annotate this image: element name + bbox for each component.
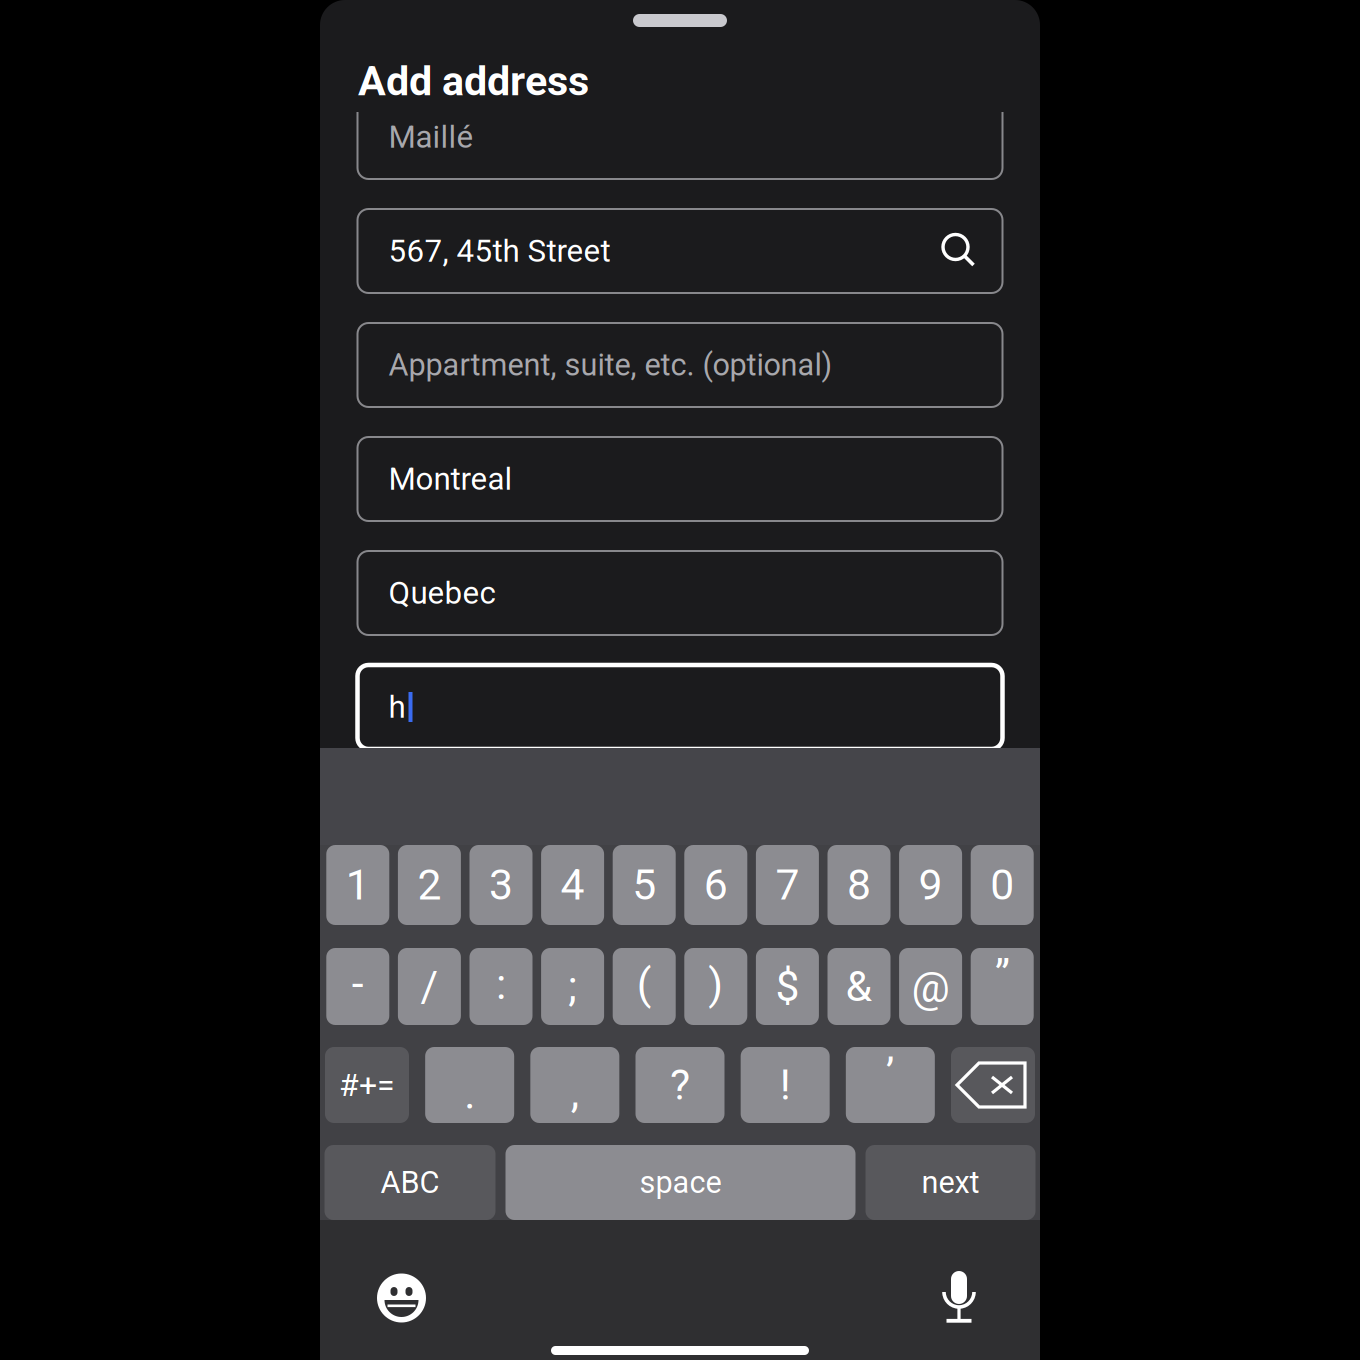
button[interactable]: ! — [741, 1047, 830, 1123]
staticText: . — [464, 1069, 475, 1119]
staticText: / — [420, 961, 438, 1011]
button[interactable]: Maillé — [357, 95, 1002, 179]
button[interactable]: Emoji keyboard — [377, 1273, 426, 1322]
button[interactable]: ABC — [324, 1145, 495, 1220]
button[interactable]: $ — [756, 948, 819, 1025]
button[interactable]: Delete — [951, 1047, 1035, 1123]
button[interactable]: - — [326, 948, 389, 1025]
button[interactable]: Dictation — [945, 1271, 979, 1325]
button[interactable]: 0 — [971, 845, 1034, 925]
button[interactable]: 6 — [684, 845, 747, 925]
staticText: 5 — [632, 860, 656, 910]
staticText: ; — [568, 961, 577, 1011]
button[interactable]: , — [530, 1047, 619, 1123]
staticText: Quebec — [388, 575, 495, 611]
staticText: next — [921, 1164, 979, 1200]
button[interactable]: 5 — [613, 845, 676, 925]
staticText: space — [639, 1164, 721, 1200]
staticText: 1 — [346, 860, 370, 910]
staticText: Maillé — [388, 119, 473, 155]
staticText: ’ — [886, 1049, 895, 1099]
staticText: 4 — [561, 860, 585, 910]
staticText: 0 — [990, 860, 1014, 910]
staticText: Montreal — [388, 461, 512, 497]
staticText: Add address — [358, 57, 589, 105]
button[interactable]: 9 — [899, 845, 962, 925]
button[interactable]: & — [827, 948, 890, 1025]
staticText: 2 — [417, 860, 441, 910]
button[interactable]: 4 — [541, 845, 604, 925]
button[interactable]: 567, 45th Street — [357, 209, 1002, 293]
staticText: - — [352, 958, 364, 1008]
staticText: Appartment, suite, etc. (optional) — [388, 347, 832, 383]
staticText: #+= — [339, 1066, 395, 1104]
button[interactable]: . — [425, 1047, 514, 1123]
button[interactable]: space — [505, 1145, 855, 1220]
button[interactable]: Appartment, suite, etc. (optional) — [357, 323, 1002, 407]
staticText: ABC — [380, 1164, 439, 1200]
button[interactable]: #+= — [325, 1047, 409, 1123]
staticText: @ — [912, 962, 950, 1012]
button[interactable]: ” — [971, 948, 1034, 1025]
button[interactable]: Montreal — [357, 437, 1002, 521]
staticText: h — [388, 689, 405, 725]
staticText: 7 — [775, 860, 799, 910]
staticText: & — [845, 961, 872, 1011]
button[interactable]: 8 — [827, 845, 890, 925]
button[interactable]: ? — [635, 1047, 724, 1123]
button[interactable]: next — [865, 1145, 1035, 1220]
staticText: 3 — [489, 860, 513, 910]
button[interactable]: h — [357, 665, 1002, 749]
button[interactable]: Quebec — [357, 551, 1002, 635]
staticText: : — [496, 959, 506, 1009]
button[interactable]: ’ — [846, 1047, 935, 1123]
button[interactable]: 7 — [756, 845, 819, 925]
staticText: , — [571, 1068, 579, 1118]
button[interactable]: / — [398, 948, 461, 1025]
button[interactable]: ) — [684, 948, 747, 1025]
button[interactable]: : — [469, 948, 532, 1025]
staticText: ! — [780, 1060, 791, 1110]
staticText: 9 — [919, 860, 943, 910]
button[interactable]: 3 — [469, 845, 532, 925]
staticText: ” — [995, 950, 1010, 1000]
staticText: 567, 45th Street — [388, 233, 610, 269]
button[interactable]: @ — [899, 948, 962, 1025]
staticText: ( — [637, 959, 652, 1009]
button[interactable]: 1 — [326, 845, 389, 925]
staticText: $ — [775, 961, 799, 1011]
staticText: ) — [708, 959, 723, 1009]
staticText: ? — [670, 1060, 690, 1110]
button[interactable]: ; — [541, 948, 604, 1025]
button[interactable]: 2 — [398, 845, 461, 925]
staticText: 6 — [704, 860, 728, 910]
button[interactable]: ( — [613, 948, 676, 1025]
staticText: 8 — [847, 860, 871, 910]
